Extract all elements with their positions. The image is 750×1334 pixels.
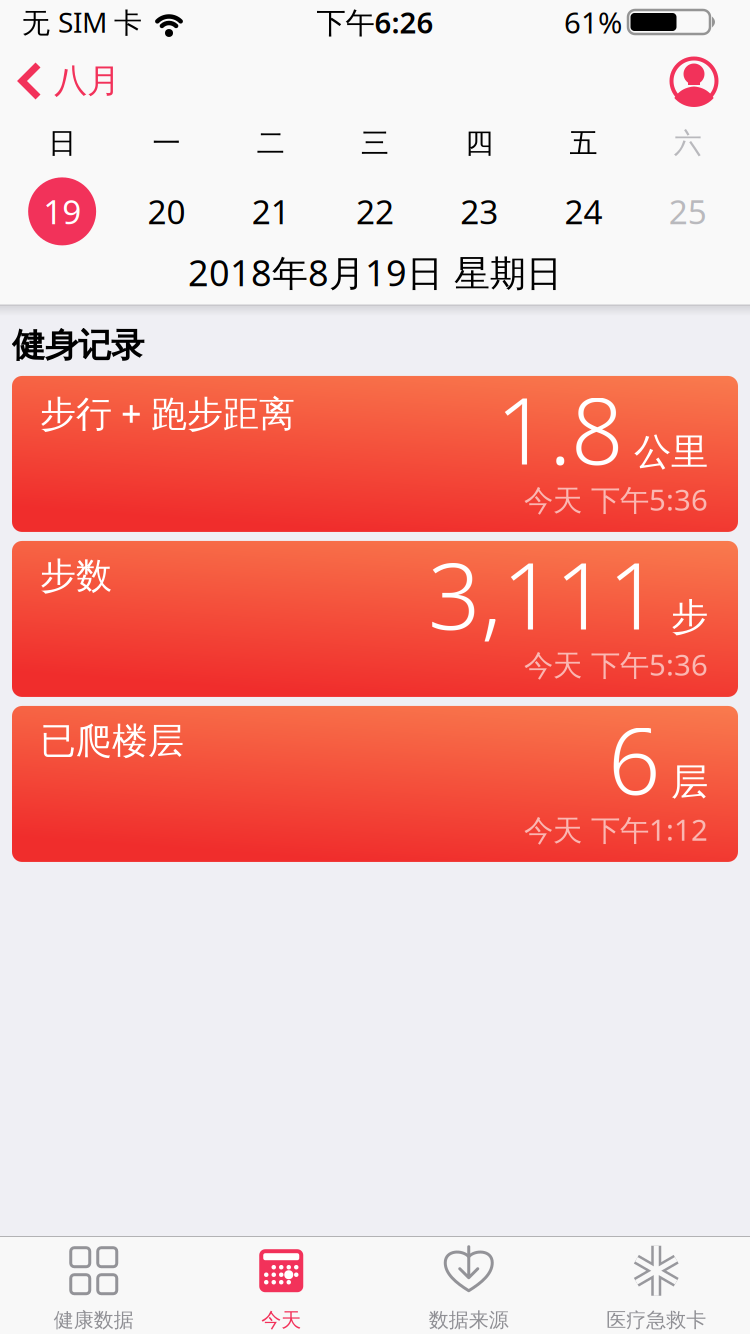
button[interactable]: 日 [10,126,114,245]
staticText: 今天 [261,1308,301,1332]
staticText: 2018年8月19日 星期日 [188,248,562,296]
staticText: 24 [565,189,603,234]
staticText: 一 [152,126,180,160]
button[interactable]: 健康数据 [0,1247,187,1332]
staticText: 19 [43,189,81,234]
staticText: 25 [669,189,707,234]
button[interactable]: 一 [114,126,219,245]
button[interactable]: 数据来源 [375,1247,562,1332]
staticText: 无 SIM 卡 [22,3,142,41]
staticText: 六 [674,126,702,160]
staticText: 21 [252,189,290,234]
button[interactable]: 医疗急救卡 [562,1247,750,1332]
button[interactable] [668,55,750,107]
staticText: 五 [570,126,598,160]
button[interactable]: 步数 [12,541,738,697]
staticText: 三 [361,126,389,160]
button[interactable]: 已爬楼层 [12,706,738,862]
staticText: 八月 [54,60,120,101]
staticText: 步 [671,594,708,640]
staticText: 今天 下午5:36 [524,645,708,684]
staticText: 步数 [40,554,112,598]
staticText: 23 [460,189,498,234]
button[interactable]: 八月 [0,60,120,101]
button[interactable]: 二 [219,126,323,245]
staticText: 日 [48,126,76,160]
button[interactable]: 今天 [187,1247,375,1332]
staticText: 公里 [634,429,708,475]
staticText: 3,111 [428,533,661,655]
staticText: 22 [356,189,394,234]
button[interactable]: 六 [636,126,740,245]
staticText: 医疗急救卡 [606,1308,706,1332]
staticText: 61% [564,2,622,41]
button[interactable]: 步行 + 跑步距离 [12,376,738,532]
staticText: 6 [608,698,661,820]
staticText: 1.8 [496,368,624,490]
staticText: 20 [147,189,185,234]
button[interactable]: 四 [427,126,531,245]
button[interactable]: 三 [323,126,427,245]
staticText: 健康数据 [54,1308,134,1332]
staticText: 已爬楼层 [40,719,184,763]
staticText: 健身记录 [12,325,144,366]
staticText: 今天 下午1:12 [524,810,708,849]
staticText: 今天 下午5:36 [524,480,708,519]
staticText: 数据来源 [429,1308,509,1332]
staticText: 下午6:26 [316,2,433,41]
staticText: 四 [465,126,493,160]
staticText: 步行 + 跑步距离 [40,389,295,437]
staticText: 层 [671,759,708,805]
staticText: 二 [257,126,285,160]
button[interactable]: 五 [531,126,636,245]
